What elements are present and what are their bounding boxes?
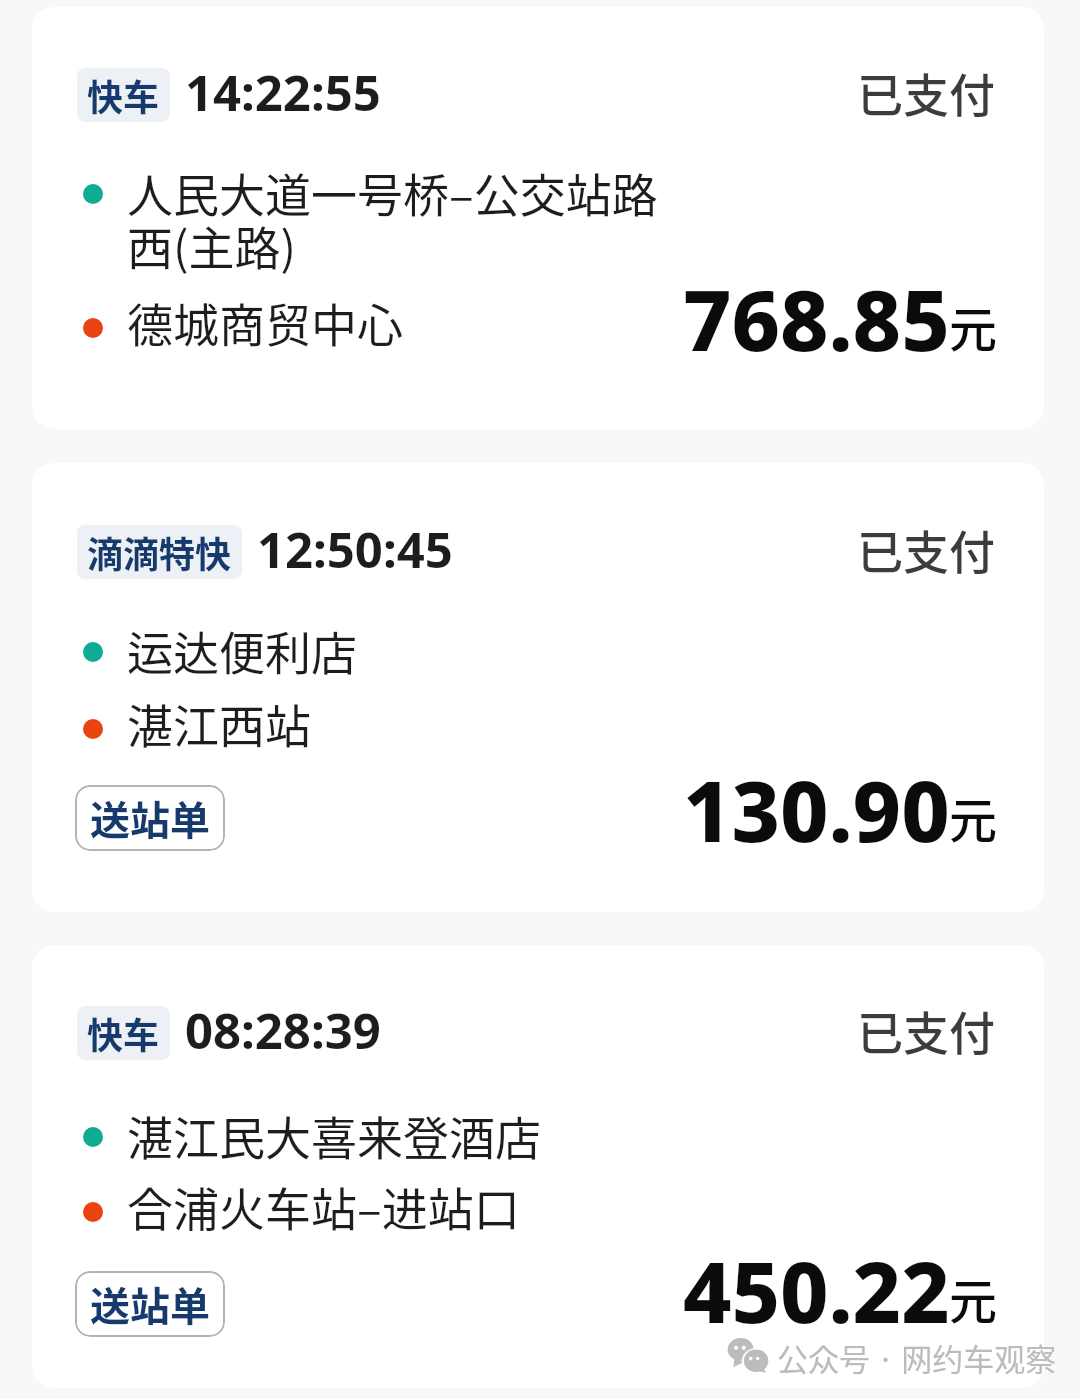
staticText: 快车	[87, 69, 160, 121]
staticText: 08:28:39	[185, 997, 381, 1064]
button[interactable]: 滴滴特快	[32, 463, 1044, 912]
other: WeChat official account	[727, 1337, 769, 1373]
staticText: 已支付	[857, 516, 995, 583]
staticText: 公众号 · 网约车观察	[777, 1335, 1057, 1380]
staticText: 快车	[87, 1007, 160, 1059]
staticText: 德城商贸中心	[127, 289, 403, 356]
staticText: 元	[949, 291, 998, 361]
button[interactable]: 快车	[77, 68, 170, 122]
button[interactable]: 送站单	[75, 785, 225, 851]
button[interactable]: 快车	[32, 945, 1044, 1388]
staticText: 送站单	[90, 789, 210, 847]
staticText: 合浦火车站–进站口	[127, 1173, 520, 1240]
staticText: 450.22	[683, 1233, 950, 1347]
staticText: 768.85	[683, 261, 950, 375]
staticText: 人民大道一号桥–公交站路 西(主路)	[127, 159, 658, 279]
button[interactable]: 送站单	[75, 1271, 225, 1337]
staticText: 14:22:55	[185, 59, 381, 126]
staticText: 滴滴特快	[87, 526, 232, 578]
staticText: 元	[949, 1263, 998, 1333]
staticText: 送站单	[90, 1275, 210, 1333]
staticText: 130.90	[683, 752, 950, 866]
button[interactable]: 快车	[77, 1006, 170, 1060]
button[interactable]: 滴滴特快	[77, 525, 242, 579]
button[interactable]: 快车	[32, 7, 1044, 429]
staticText: 运达便利店	[127, 617, 357, 684]
staticText: 已支付	[857, 997, 995, 1064]
staticText: 湛江民大喜来登酒店	[127, 1102, 541, 1169]
staticText: 湛江西站	[127, 690, 311, 757]
staticText: 元	[949, 782, 998, 852]
staticText: 已支付	[857, 59, 995, 126]
staticText: 12:50:45	[257, 516, 453, 583]
